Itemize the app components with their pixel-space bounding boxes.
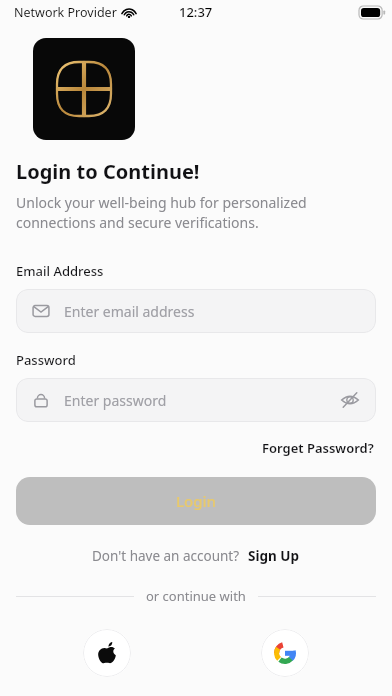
staticText: Login to Continue! (16, 158, 200, 185)
staticText: 12:37 (179, 3, 213, 21)
button[interactable]: Sign in with Google (261, 629, 309, 677)
button[interactable]: Forget Password? (260, 435, 376, 461)
button[interactable]: Login (16, 477, 376, 525)
button[interactable]: Sign Up (248, 547, 300, 565)
staticText: Unlock your well-being hub for personali… (16, 193, 376, 233)
staticText: Don't have an account? (92, 547, 240, 565)
staticText: or continue with (146, 587, 246, 605)
staticText: Enter email address (64, 302, 195, 321)
staticText: Sign Up (248, 547, 300, 565)
button[interactable]: Show password (340, 390, 360, 410)
staticText: Email Address (16, 262, 104, 280)
staticText: Network Provider (14, 4, 117, 21)
staticText: Forget Password? (262, 439, 374, 457)
staticText: Login (176, 491, 216, 511)
staticText: Enter password (64, 391, 167, 410)
staticText: Password (16, 351, 76, 369)
button[interactable]: Password field (16, 378, 376, 422)
button[interactable]: Email address field (16, 289, 376, 333)
button[interactable]: Sign in with Apple (83, 629, 131, 677)
